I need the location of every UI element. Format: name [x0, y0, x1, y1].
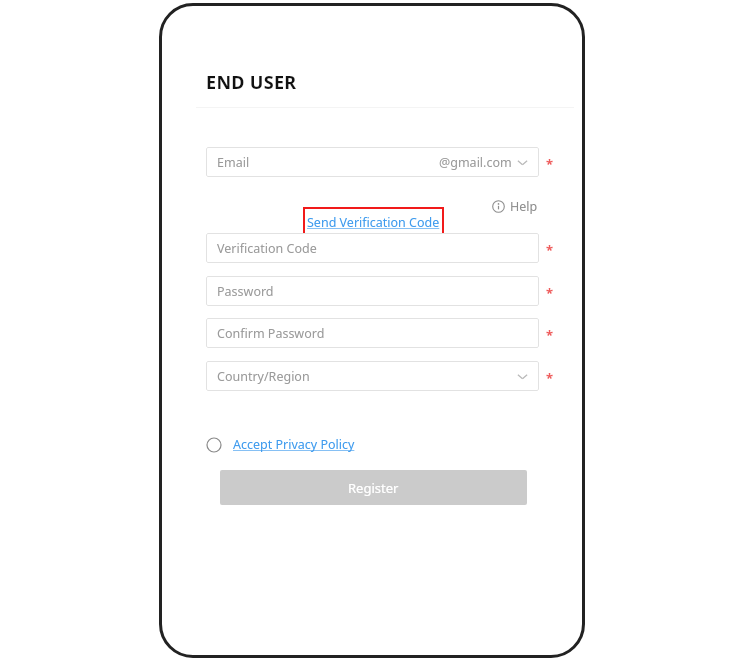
staticText: *: [546, 326, 554, 338]
staticText: Help: [510, 198, 538, 215]
button[interactable]: Accept Privacy Policy: [205, 434, 356, 455]
staticText: *: [546, 369, 554, 381]
button[interactable]: Confirm Password: [206, 318, 539, 348]
button[interactable]: Send Verification Code: [303, 207, 444, 238]
button[interactable]: Email: [206, 147, 539, 177]
staticText: END USER: [206, 70, 297, 95]
staticText: Confirm Password: [217, 325, 325, 342]
staticText: Country/Region: [217, 368, 310, 385]
staticText: *: [546, 241, 554, 253]
staticText: Verification Code: [217, 240, 317, 257]
staticText: *: [546, 155, 554, 167]
staticText: Password: [217, 283, 274, 300]
button[interactable]: Register: [220, 470, 527, 505]
staticText: Register: [348, 479, 399, 497]
staticText: @gmail.com: [439, 154, 512, 171]
staticText: Send Verification Code: [307, 214, 440, 231]
staticText: Email: [217, 154, 250, 171]
button[interactable]: Verification Code: [206, 233, 539, 263]
button[interactable]: Password: [206, 276, 539, 306]
button[interactable]: Country/Region: [206, 361, 539, 391]
button[interactable]: Help: [490, 196, 540, 217]
staticText: Accept Privacy Policy: [233, 436, 355, 453]
staticText: *: [546, 284, 554, 296]
